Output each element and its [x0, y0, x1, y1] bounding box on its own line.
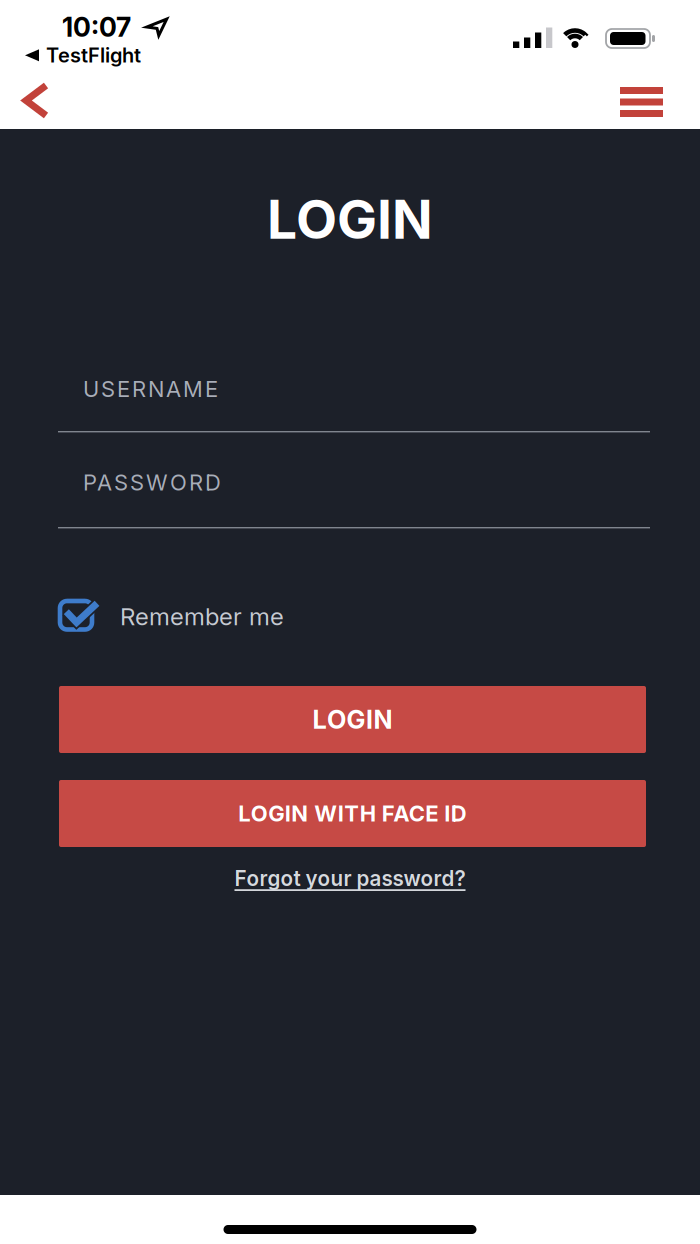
staticText: 10:07: [62, 11, 131, 43]
staticText: PASSWORD: [83, 469, 221, 496]
button[interactable]: Forgot your password?: [0, 866, 700, 891]
button[interactable]: Username: [58, 361, 650, 417]
button[interactable]: Remember me: [58, 596, 298, 636]
staticText: LOGIN: [312, 704, 392, 735]
staticText: USERNAME: [83, 376, 218, 402]
button[interactable]: LOGIN WITH FACE ID: [59, 780, 646, 847]
button[interactable]: Password: [58, 454, 650, 511]
staticText: Remember me: [120, 602, 284, 631]
button[interactable]: Back: [18, 79, 54, 121]
button[interactable]: Back to TestFlight: [25, 43, 141, 67]
staticText: Forgot your password?: [234, 866, 465, 891]
button[interactable]: Menu: [614, 81, 669, 123]
staticText: LOGIN: [267, 187, 433, 251]
staticText: TestFlight: [46, 43, 141, 67]
button[interactable]: LOGIN: [59, 686, 646, 753]
staticText: LOGIN WITH FACE ID: [238, 800, 467, 827]
